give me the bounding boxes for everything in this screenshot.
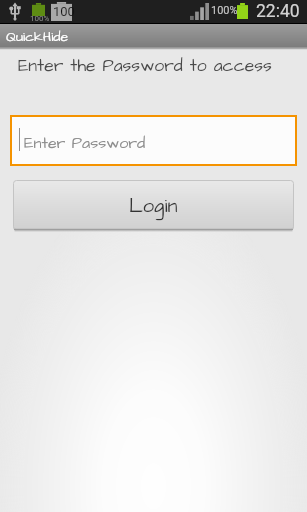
staticText: 100: [53, 4, 75, 19]
button[interactable]: Login: [13, 180, 294, 232]
staticText: 100%: [30, 14, 50, 23]
button[interactable]: Enter Password: [10, 115, 297, 166]
staticText: 22:40: [256, 1, 300, 22]
staticText: Enter Password: [24, 132, 146, 154]
staticText: QuickHide: [6, 27, 69, 46]
staticText: Enter the Password to access: [18, 54, 272, 78]
staticText: 100%: [211, 4, 238, 17]
staticText: Login: [129, 192, 178, 220]
